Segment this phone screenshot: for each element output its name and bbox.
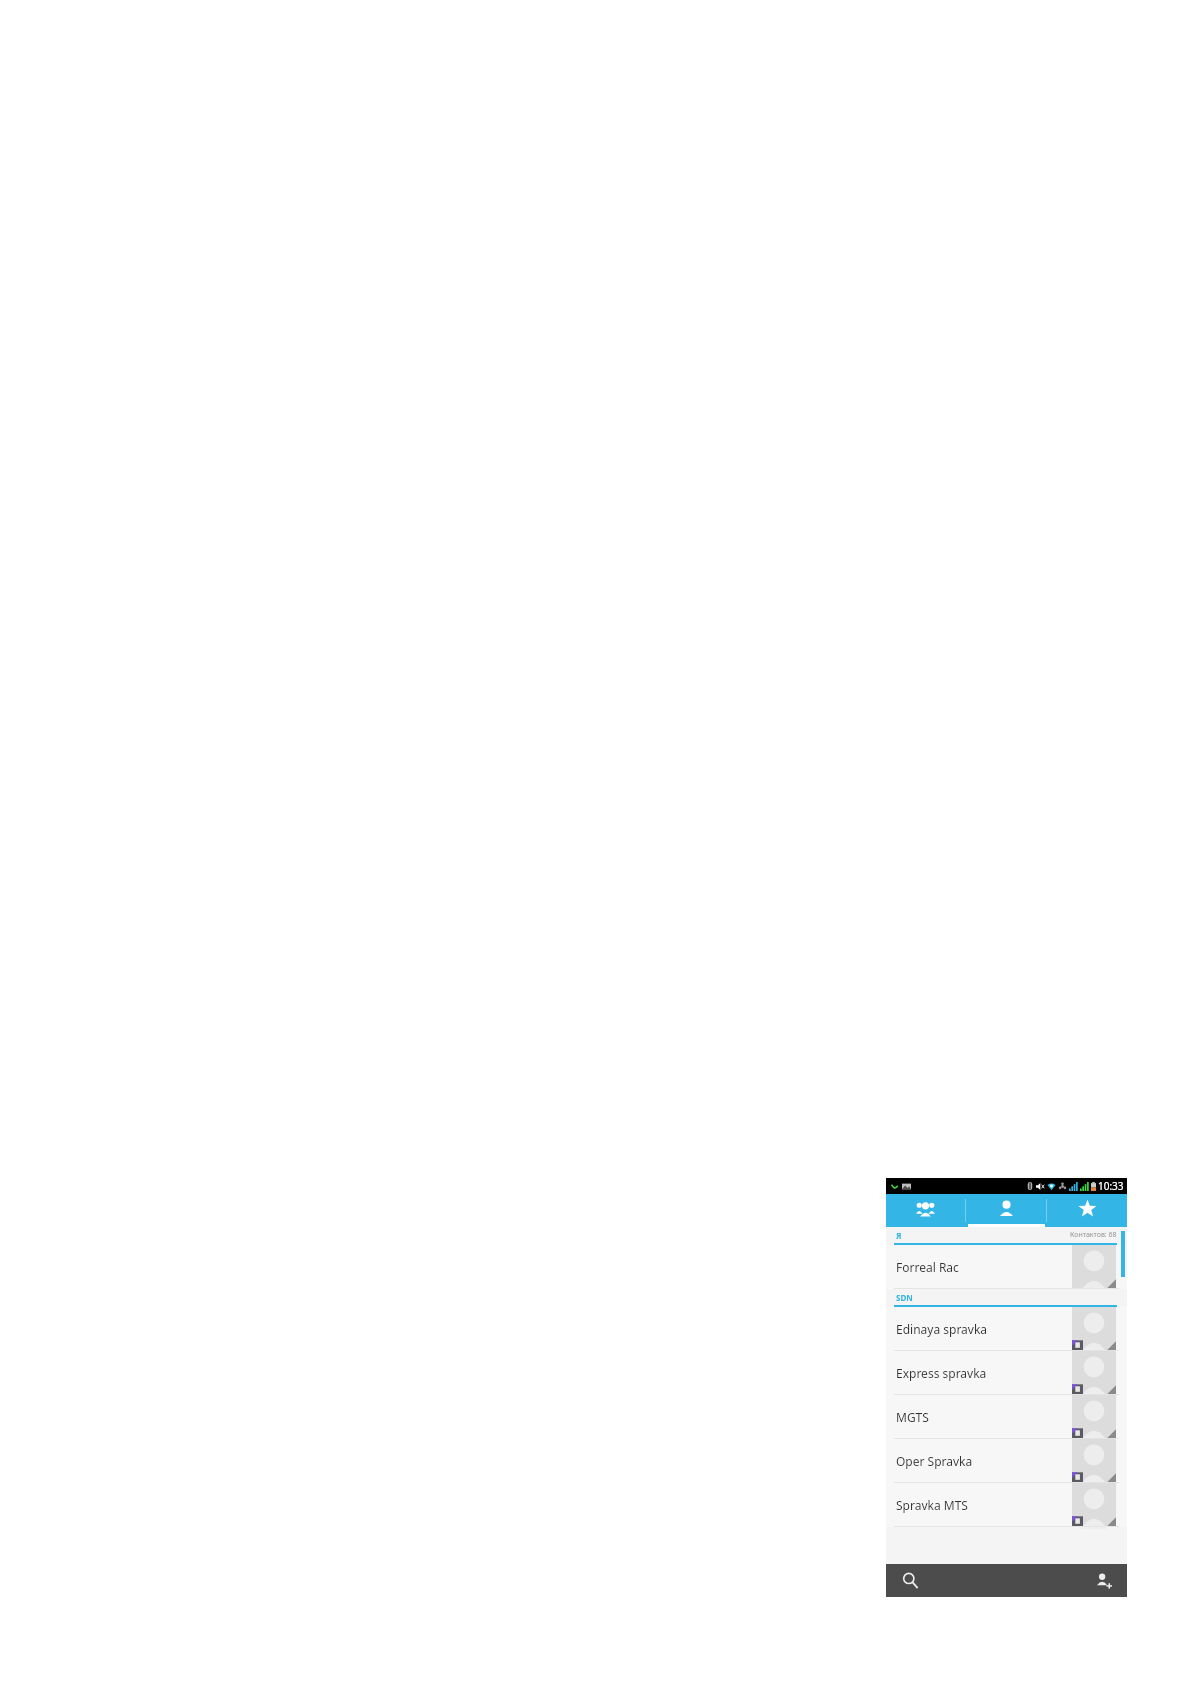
- staticText: Edinaya spravka: [896, 1321, 988, 1337]
- button[interactable]: MGTS: [886, 1395, 1127, 1439]
- staticText: 10:33: [1098, 1179, 1124, 1193]
- button[interactable]: Favorites: [1047, 1194, 1127, 1227]
- button[interactable]: Edinaya spravka: [886, 1307, 1127, 1351]
- staticText: Контактов: 68: [1070, 1230, 1117, 1240]
- button[interactable]: Search: [886, 1564, 934, 1597]
- staticText: Oper Spravka: [896, 1453, 973, 1469]
- staticText: Я: [896, 1230, 902, 1241]
- button[interactable]: Add contact: [1079, 1564, 1127, 1597]
- button[interactable]: Express spravka: [886, 1351, 1127, 1395]
- button[interactable]: Forreal Rac: [886, 1245, 1127, 1289]
- staticText: MGTS: [896, 1409, 929, 1425]
- button[interactable]: Oper Spravka: [886, 1439, 1127, 1483]
- staticText: Express spravka: [896, 1365, 987, 1381]
- button[interactable]: Groups: [886, 1194, 965, 1227]
- button[interactable]: Contacts: [966, 1194, 1046, 1227]
- button[interactable]: Spravka MTS: [886, 1483, 1127, 1527]
- staticText: Forreal Rac: [896, 1259, 959, 1275]
- staticText: SDN: [896, 1292, 913, 1303]
- staticText: Spravka MTS: [896, 1497, 968, 1513]
